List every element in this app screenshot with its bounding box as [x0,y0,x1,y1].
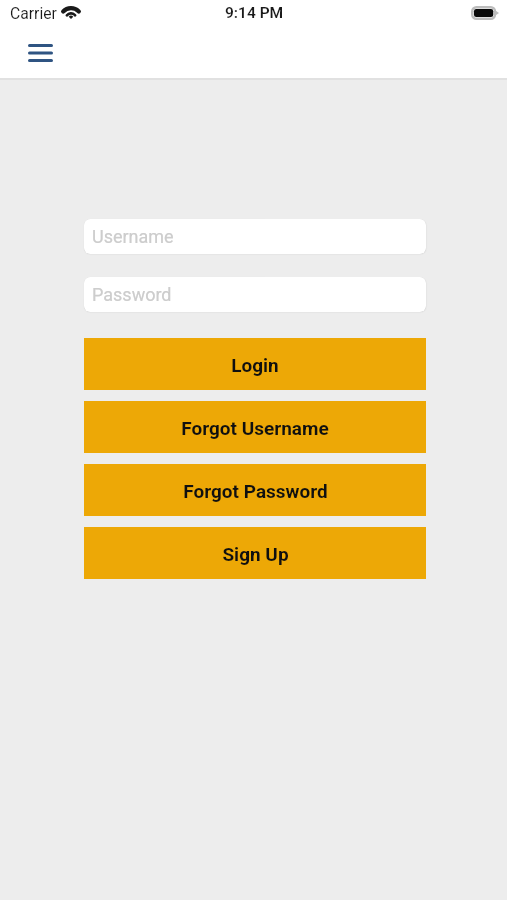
staticText: Forgot Password [183,480,328,502]
staticText: Password [92,284,172,305]
staticText: 9:14 PM [225,4,284,22]
button[interactable]: Sign Up [84,527,426,579]
button[interactable]: Login [84,338,426,390]
button[interactable]: Forgot Password [84,464,426,516]
staticText: Forgot Username [181,417,329,439]
button[interactable]: Username [84,219,426,254]
staticText: Sign Up [222,543,289,565]
button[interactable]: Menu [13,35,67,71]
staticText: Login [231,354,279,376]
staticText: Username [92,226,174,247]
staticText: Carrier [10,4,57,22]
button[interactable]: Forgot Username [84,401,426,453]
button[interactable]: Password [84,277,426,312]
